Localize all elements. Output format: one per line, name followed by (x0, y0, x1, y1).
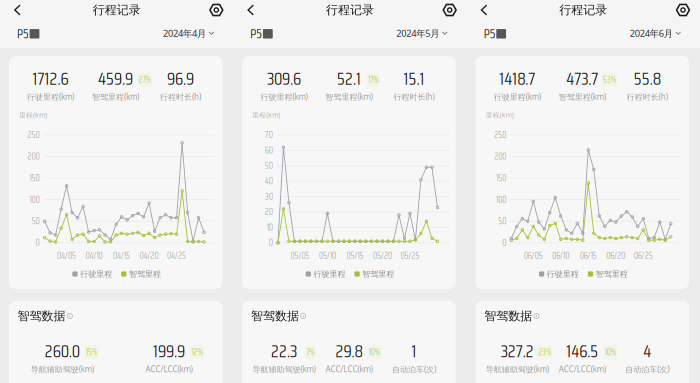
staticText: 10% (605, 345, 616, 359)
staticText: 150 (496, 171, 506, 185)
staticText: 55.8 (634, 65, 661, 92)
staticText: 260.0 (45, 337, 80, 365)
staticText: 04/25 (167, 249, 186, 263)
staticText: 2024年5月 (396, 27, 439, 39)
button[interactable]: Settings (205, 0, 227, 21)
staticText: 04/05 (57, 249, 76, 263)
staticText: 199.9 (153, 337, 185, 365)
staticText: 05/15 (346, 249, 363, 263)
staticText: P5 (484, 24, 496, 44)
button[interactable]: Back (472, 0, 496, 21)
button[interactable]: Back (5, 0, 29, 21)
staticText: 行程记录 (559, 3, 607, 17)
staticText: 20 (265, 205, 273, 219)
staticText: 智驾数据 (251, 309, 299, 323)
staticText: 1712.6 (33, 65, 69, 92)
staticText: 200 (494, 150, 506, 163)
staticText: 05/05 (290, 249, 309, 263)
staticText: 行驶里程 (313, 269, 345, 279)
staticText: 250 (494, 128, 506, 142)
staticText: 自动泊车(次) (392, 364, 436, 374)
staticText: 行程时长(h) (627, 91, 668, 102)
staticText: 309.6 (267, 65, 301, 92)
staticText: 200 (27, 150, 39, 163)
staticText: 12% (191, 345, 202, 359)
button[interactable]: Settings (672, 0, 694, 21)
staticText: 50 (31, 214, 39, 228)
staticText: 导航辅助驾驶(km) (486, 364, 549, 374)
staticText: 行驶里程 (80, 269, 112, 279)
staticText: 行程时长(h) (160, 91, 201, 102)
staticText: 100 (496, 193, 506, 207)
staticText: 40 (265, 174, 273, 188)
staticText: 06/20 (606, 249, 625, 263)
staticText: 1 (411, 337, 416, 365)
staticText: 05/10 (319, 249, 336, 263)
staticText: 30 (265, 190, 273, 204)
staticText: 自动泊车(次) (625, 364, 669, 374)
staticText: 05/25 (400, 249, 419, 263)
staticText: 52.1 (337, 65, 361, 92)
staticText: 06/25 (634, 249, 653, 263)
staticText: 智驾里程(km) (559, 91, 606, 102)
staticText: 智驾数据 (18, 309, 66, 323)
staticText: 智驾里程(km) (325, 91, 372, 102)
staticText: 15.1 (403, 65, 424, 92)
staticText: 04/15 (113, 249, 130, 263)
button[interactable]: Settings (439, 0, 461, 21)
staticText: 智驾里程 (129, 269, 161, 279)
staticText: 04/10 (86, 249, 103, 263)
button[interactable]: 2024年6月 (630, 23, 681, 43)
staticText: 15% (86, 345, 97, 359)
staticText: 29.8 (335, 337, 362, 365)
staticText: 0 (502, 236, 506, 250)
staticText: ACC/LCC(km) (559, 364, 606, 374)
staticText: 06/05 (524, 249, 543, 263)
staticText: P5 (250, 24, 262, 44)
staticText: 0 (35, 236, 39, 250)
staticText: 2024年4月 (163, 27, 206, 39)
staticText: 05/20 (373, 249, 392, 263)
staticText: 17% (368, 73, 378, 86)
staticText: 06/10 (552, 249, 569, 263)
staticText: 4 (643, 337, 651, 365)
staticText: 行驶里程(km) (494, 91, 541, 102)
button[interactable]: 2024年5月 (396, 23, 448, 43)
staticText: 里程(km) (486, 111, 514, 119)
staticText: 23% (538, 345, 551, 359)
staticText: 06/15 (580, 249, 597, 263)
staticText: 250 (27, 128, 39, 142)
staticText: 行驶里程(km) (260, 91, 307, 102)
staticText: 智驾里程 (362, 269, 394, 279)
staticText: 50 (265, 159, 273, 173)
staticText: 0 (269, 236, 273, 250)
button[interactable]: 2024年4月 (163, 23, 214, 43)
staticText: 60 (265, 143, 273, 157)
staticText: 智驾数据 (484, 309, 532, 323)
staticText: 04/20 (140, 249, 159, 263)
staticText: 2024年6月 (630, 27, 673, 39)
staticText: 导航辅助驾驶(km) (31, 364, 94, 374)
staticText: 10 (267, 220, 273, 234)
staticText: 22.3 (271, 337, 297, 365)
staticText: 行驶里程 (547, 269, 579, 279)
staticText: 行程时长(h) (393, 91, 434, 102)
staticText: 146.5 (566, 337, 598, 365)
staticText: 150 (29, 171, 39, 185)
staticText: ACC/LCC(km) (145, 364, 192, 374)
staticText: 70 (265, 128, 273, 142)
staticText: 智驾里程(km) (92, 91, 139, 102)
staticText: 行驶里程(km) (27, 91, 74, 102)
staticText: 100 (29, 193, 39, 207)
staticText: 里程(km) (19, 111, 47, 119)
staticText: 1418.7 (499, 65, 535, 92)
button[interactable]: Back (239, 0, 263, 21)
staticText: 96.9 (167, 65, 194, 92)
staticText: 行程记录 (93, 3, 141, 17)
staticText: ACC/LCC(km) (325, 364, 372, 374)
staticText: 53% (603, 73, 616, 86)
staticText: 27% (138, 73, 150, 86)
staticText: 行程记录 (326, 3, 374, 17)
staticText: 10% (369, 345, 380, 359)
staticText: 里程(km) (252, 111, 280, 119)
